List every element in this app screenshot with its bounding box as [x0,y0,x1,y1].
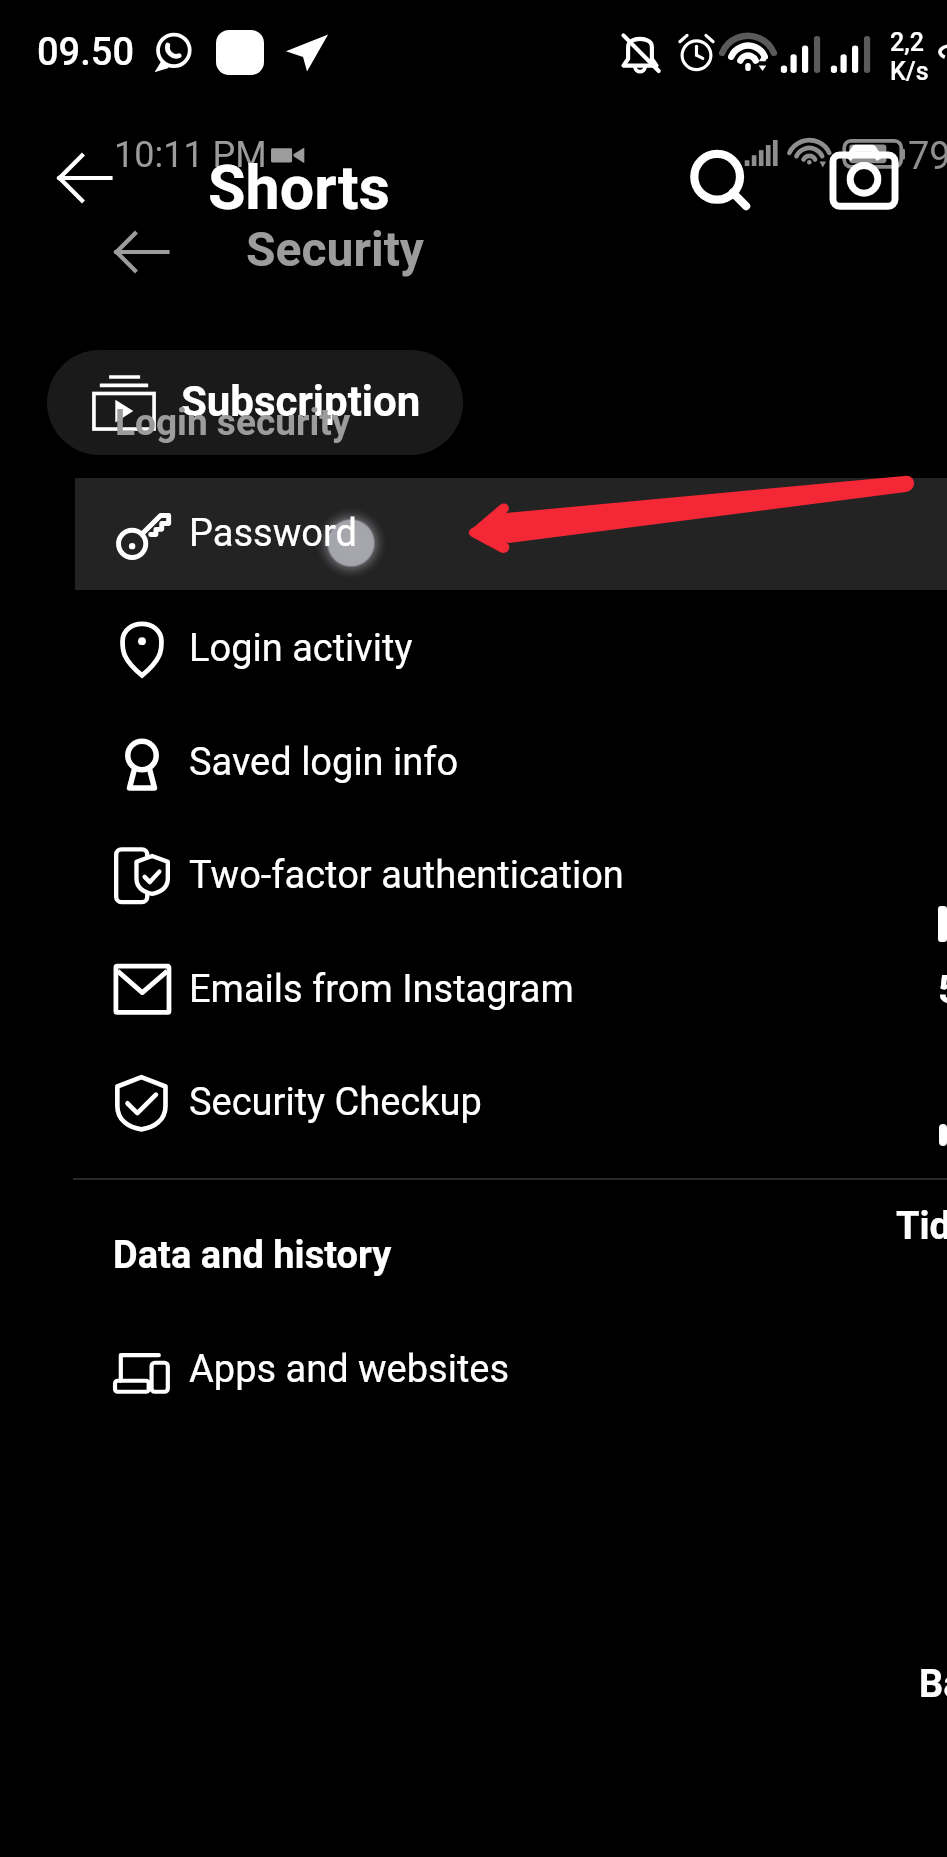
button[interactable]: Security Checkup [75,1047,947,1159]
button[interactable]: Apps and websites [75,1314,947,1426]
staticText: Shorts [208,152,390,223]
staticText: Security Checkup [189,1080,482,1125]
staticText: 09.50 [37,30,135,75]
staticText: Emails from Instagram [189,967,574,1012]
button[interactable]: Subscription [47,350,463,455]
staticText: 10:11 PM [114,134,267,176]
button[interactable]: Emails from Instagram [75,934,947,1046]
staticText: Ba [919,1662,947,1707]
staticText: 2,2 [890,28,924,57]
button[interactable]: Login activity [75,593,947,705]
staticText: Login activity [189,626,413,671]
button[interactable]: Back [58,154,112,202]
staticText: 5 [938,968,947,1013]
staticText: Login security [115,401,351,444]
button[interactable]: Password [75,478,947,590]
staticText: Saved login info [189,740,459,785]
button[interactable]: Saved login info [75,707,947,819]
staticText: Data and history [113,1233,392,1278]
staticText: Two-factor authentication [189,853,624,898]
staticText: 79 [908,134,947,179]
button[interactable]: Two-factor authentication [75,820,947,932]
button[interactable]: Camera [831,147,897,208]
staticText: Password [189,511,357,556]
staticText: Security [246,221,424,277]
staticText: K/s [890,57,929,86]
staticText: Tid [896,1204,947,1249]
staticText: Apps and websites [189,1347,510,1392]
button[interactable]: Search [690,150,751,211]
staticText: Subscription [181,377,421,426]
